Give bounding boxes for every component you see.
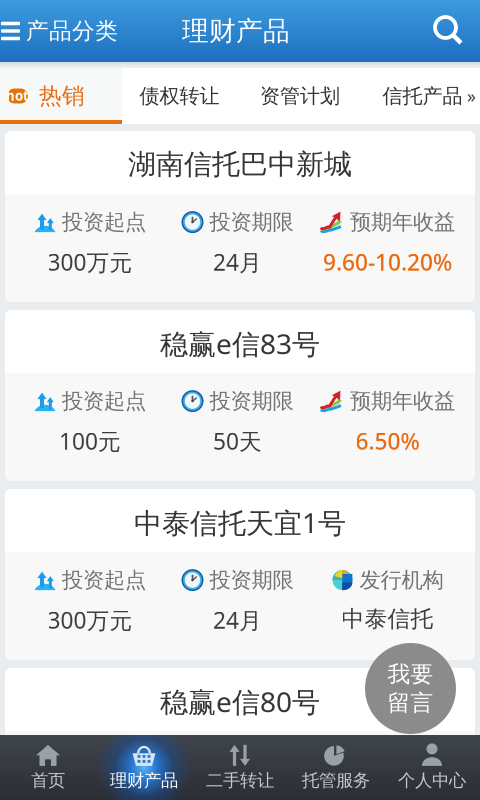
staticText: 7.00% [355, 784, 419, 800]
staticText: 投资期限 [209, 746, 293, 772]
staticText: 托管服务 [302, 770, 370, 791]
staticText: 24月 [213, 247, 262, 277]
staticText: 留言 [387, 689, 433, 717]
staticText: 投资起点 [62, 567, 146, 593]
staticText: 稳赢e信80号 [160, 683, 320, 720]
staticText: 二手转让 [206, 770, 274, 791]
button[interactable]: 搜索 [418, 0, 480, 62]
staticText: 发行机构 [359, 567, 443, 593]
staticText: 24月 [213, 605, 262, 635]
button[interactable]: 信托产品 [363, 68, 480, 124]
button[interactable]: 债权转让 [122, 68, 237, 124]
staticText: 300万元 [47, 605, 132, 635]
staticText: 6.50% [355, 426, 419, 456]
button[interactable]: hot [0, 68, 122, 124]
staticText: hot [6, 87, 29, 104]
staticText: 理财产品 [110, 770, 178, 791]
button[interactable]: 资管计划 [237, 68, 363, 124]
staticText: 投资起点 [62, 746, 146, 772]
staticText: 我要 [387, 660, 433, 688]
button[interactable]: 稳赢e信80号 [5, 668, 475, 800]
staticText: 50天 [213, 426, 262, 456]
button[interactable]: 中泰信托天宜1号 [5, 489, 475, 660]
staticText: 9.60-10.20% [323, 247, 452, 277]
button[interactable]: 湖南信托巴中新城 [5, 131, 475, 302]
button[interactable]: 二手转让 [192, 735, 288, 800]
staticText: 产品分类 [26, 17, 118, 45]
button[interactable]: 理财产品 [96, 735, 192, 800]
button[interactable]: 个人中心 [384, 735, 480, 800]
staticText: 债权转让 [139, 84, 219, 108]
button[interactable]: 产品分类 [0, 0, 130, 62]
button[interactable]: 稳赢e信83号 [5, 310, 475, 481]
staticText: 300万元 [47, 247, 132, 277]
staticText: 投资期限 [209, 209, 293, 235]
staticText: 投资期限 [209, 567, 293, 593]
staticText: 热销 [39, 82, 85, 110]
staticText: 预期年收益 [350, 388, 455, 414]
staticText: 投资起点 [62, 388, 146, 414]
staticText: 预期年收益 [350, 209, 455, 235]
staticText: 资管计划 [260, 84, 340, 108]
button[interactable]: 首页 [0, 735, 96, 800]
staticText: 信托产品 [382, 84, 462, 108]
staticText: 湖南信托巴中新城 [128, 147, 352, 182]
button[interactable]: 我要 [365, 643, 456, 734]
staticText: 中泰信托 [341, 605, 433, 633]
staticText: 投资期限 [209, 388, 293, 414]
staticText: 稳赢e信83号 [160, 325, 320, 362]
staticText: 理财产品 [182, 15, 290, 47]
staticText: 个人中心 [398, 770, 466, 791]
staticText: 首页 [31, 770, 65, 791]
staticText: 100元 [59, 784, 121, 800]
staticText: » [467, 84, 476, 107]
staticText: 中泰信托天宜1号 [134, 504, 346, 541]
staticText: 100元 [59, 426, 121, 456]
staticText: 投资起点 [62, 209, 146, 235]
staticText: 50天 [213, 784, 262, 800]
staticText: 预期年收益 [350, 746, 455, 772]
button[interactable]: 托管服务 [288, 735, 384, 800]
